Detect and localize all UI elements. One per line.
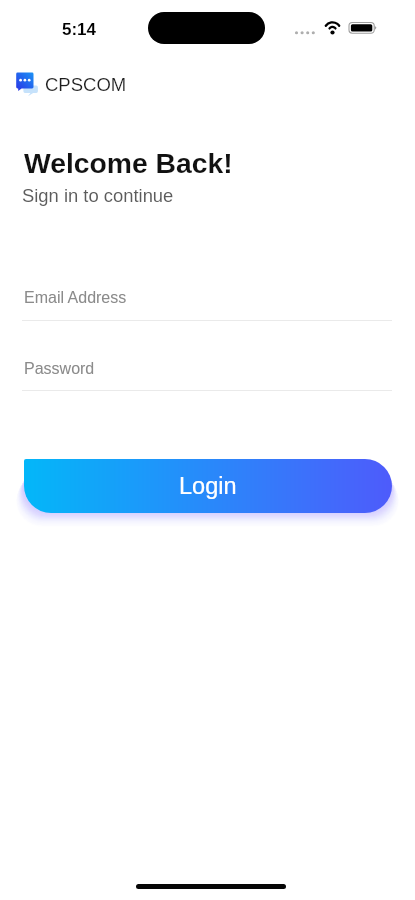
button[interactable]: Email Address [22, 289, 392, 321]
staticText: Welcome Back! [24, 147, 233, 179]
button[interactable]: Password [22, 360, 392, 391]
button[interactable]: CPSCOM logo [14, 68, 127, 96]
staticText: Password [24, 360, 95, 378]
other: Signal, Wi-Fi and battery status [290, 16, 385, 40]
staticText: Login [179, 473, 237, 499]
button[interactable]: Login [24, 459, 392, 513]
other: CPSCOM logo [14, 69, 40, 95]
staticText: 5:14 [62, 20, 97, 39]
staticText: CPSCOM [45, 74, 127, 95]
staticText: Email Address [24, 289, 127, 307]
staticText: Sign in to continue [22, 185, 174, 206]
